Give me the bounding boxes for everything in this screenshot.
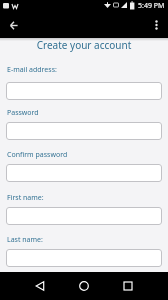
button[interactable] [6,122,162,140]
button[interactable] [6,164,162,182]
staticText: Confirm password [7,150,68,160]
staticText: Last name: [7,235,43,245]
button[interactable] [62,272,106,300]
button[interactable] [6,249,162,267]
button[interactable] [150,17,162,33]
button[interactable] [106,272,150,300]
staticText: 5:49 PM [138,1,165,11]
staticText: E-mail address: [7,65,57,75]
button[interactable] [6,207,162,225]
staticText: First name: [7,193,44,203]
button[interactable] [18,272,62,300]
button[interactable] [6,82,162,100]
staticText: Password [7,108,39,118]
button[interactable] [6,17,22,33]
staticText: Create your account [0,38,168,52]
